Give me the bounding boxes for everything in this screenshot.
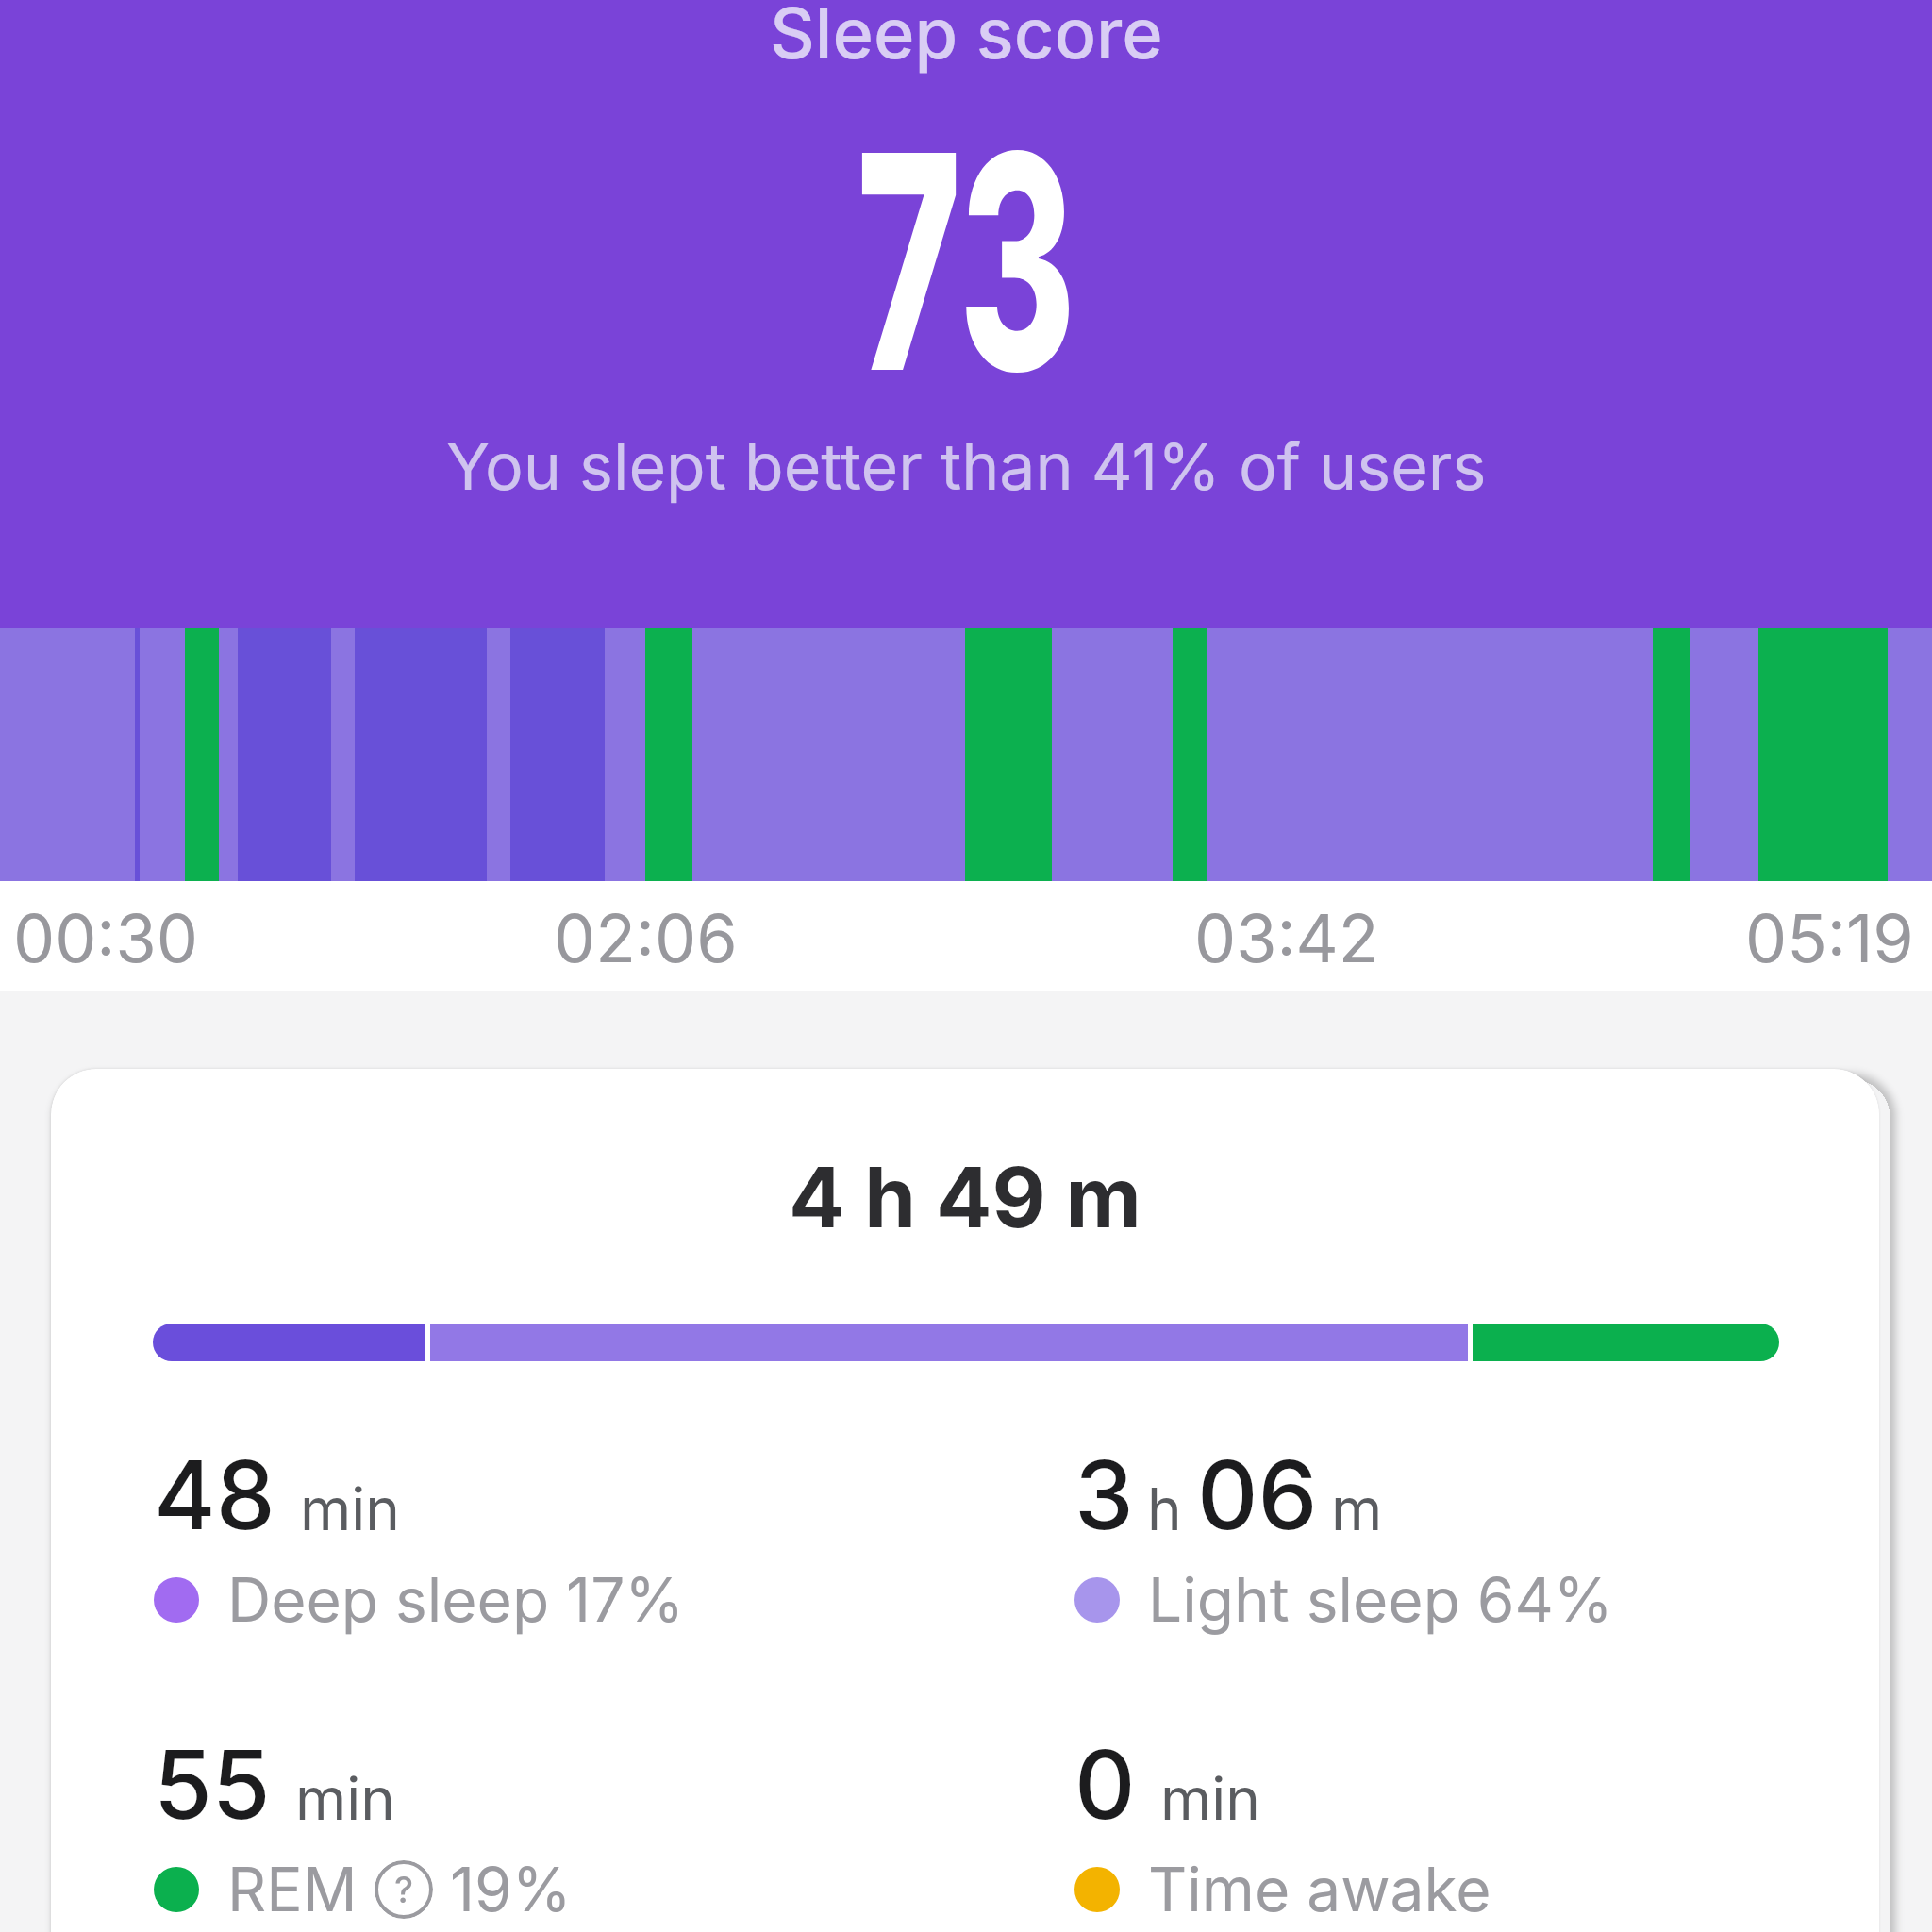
staticText: ? — [394, 1868, 414, 1911]
staticText: 73 — [856, 81, 1077, 441]
staticText: m — [1331, 1474, 1383, 1544]
staticText: 03:42 — [1194, 898, 1379, 978]
staticText: You slept better than 41% of users — [446, 427, 1487, 505]
staticText: 02:06 — [554, 898, 738, 978]
staticText: 00:30 — [13, 898, 198, 978]
staticText: 06 — [1197, 1438, 1318, 1552]
staticText: 48 — [154, 1438, 275, 1552]
staticText: 3 — [1074, 1438, 1134, 1552]
staticText: 19% — [450, 1853, 572, 1925]
staticText: 55 — [154, 1727, 271, 1841]
staticText: Time awake — [1148, 1853, 1491, 1925]
staticText: min — [295, 1763, 395, 1834]
staticText: 0 — [1074, 1727, 1136, 1841]
staticText: min — [1160, 1763, 1260, 1834]
staticText: Deep sleep 17% — [227, 1563, 685, 1636]
button[interactable]: ? — [375, 1860, 433, 1919]
staticText: Light sleep 64% — [1148, 1563, 1613, 1636]
staticText: Sleep score — [770, 0, 1163, 75]
staticText: min — [300, 1474, 400, 1544]
staticText: 4 h 49 m — [789, 1147, 1141, 1247]
staticText: 05:19 — [1745, 898, 1914, 978]
staticText: h — [1147, 1474, 1182, 1544]
staticText: REM — [227, 1853, 358, 1925]
